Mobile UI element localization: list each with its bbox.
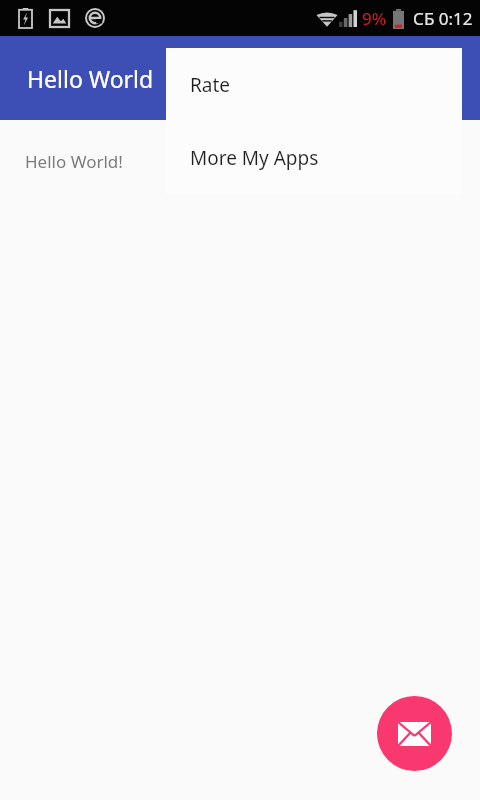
button[interactable]: Compose message — [377, 696, 452, 771]
staticText: СБ 0:12 — [413, 7, 473, 30]
button[interactable]: More My Apps — [166, 121, 462, 194]
staticText: More My Apps — [190, 145, 319, 171]
staticText: Rate — [190, 72, 231, 98]
button[interactable]: Rate — [166, 48, 462, 121]
staticText: 9% — [362, 7, 387, 30]
staticText: Hello World! — [25, 150, 123, 173]
staticText: Hello World — [27, 63, 154, 94]
